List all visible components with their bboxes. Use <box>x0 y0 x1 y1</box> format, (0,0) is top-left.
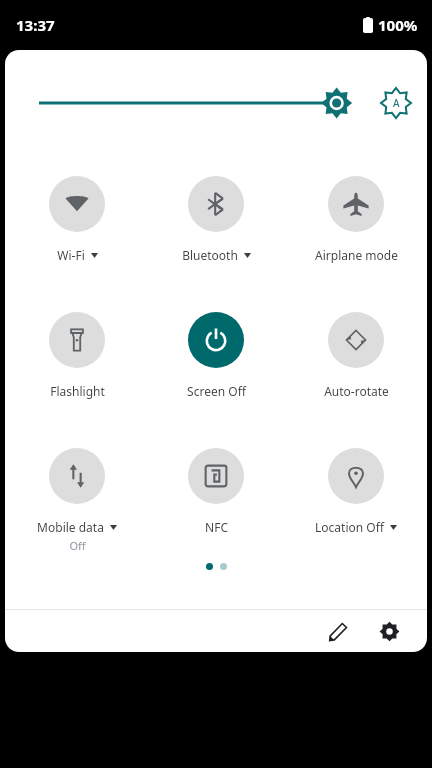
button[interactable]: Screen Off <box>148 291 284 399</box>
button[interactable]: Mobile data <box>9 427 145 553</box>
staticText: Mobile data <box>37 519 104 535</box>
staticText: Auto-rotate <box>324 383 389 399</box>
button[interactable]: NFC <box>148 427 284 535</box>
button[interactable]: Settings <box>367 610 411 652</box>
staticText: Off <box>69 538 86 553</box>
button[interactable]: Auto-rotate <box>288 291 424 399</box>
staticText: Flashlight <box>50 383 105 399</box>
button[interactable]: Page 2 <box>220 563 227 570</box>
staticText: Wi-Fi <box>57 247 85 263</box>
staticText: Airplane mode <box>315 247 398 263</box>
staticText: NFC <box>205 519 228 535</box>
button[interactable]: Page 1 <box>206 563 213 570</box>
staticText: Location Off <box>315 519 384 535</box>
button[interactable]: Auto brightness <box>379 86 413 120</box>
button[interactable]: Location Off <box>288 427 424 535</box>
button[interactable] <box>39 86 365 120</box>
staticText: 100% <box>378 15 418 35</box>
staticText: Bluetooth <box>182 247 238 263</box>
button[interactable]: Wi-Fi <box>9 155 145 263</box>
button[interactable]: Edit tiles <box>316 610 360 652</box>
staticText: 13:37 <box>16 15 55 35</box>
button[interactable]: Airplane mode <box>288 155 424 263</box>
staticText: Screen Off <box>187 383 246 399</box>
staticText: A <box>393 96 400 110</box>
button[interactable]: Flashlight <box>9 291 145 399</box>
button[interactable]: Bluetooth <box>148 155 284 263</box>
